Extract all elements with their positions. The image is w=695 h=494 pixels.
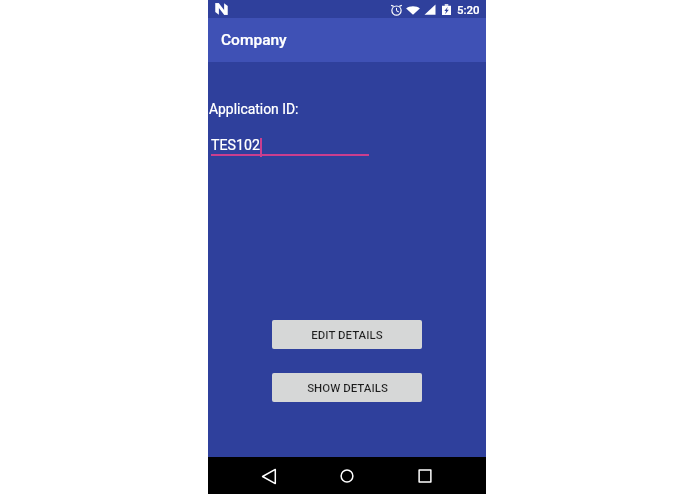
button[interactable]: SHOW DETAILS bbox=[272, 373, 422, 402]
staticText: TES102 bbox=[211, 137, 260, 154]
staticText: EDIT DETAILS bbox=[311, 328, 383, 341]
button[interactable]: Home bbox=[330, 459, 364, 493]
button[interactable]: EDIT DETAILS bbox=[272, 320, 422, 349]
button[interactable]: Back bbox=[252, 459, 286, 493]
button[interactable]: Recents bbox=[408, 459, 442, 493]
staticText: Application ID: bbox=[209, 101, 299, 117]
staticText: Company bbox=[221, 31, 287, 49]
staticText: 5:20 bbox=[457, 3, 480, 16]
staticText: SHOW DETAILS bbox=[307, 381, 388, 394]
button[interactable]: Application ID input bbox=[211, 135, 369, 154]
